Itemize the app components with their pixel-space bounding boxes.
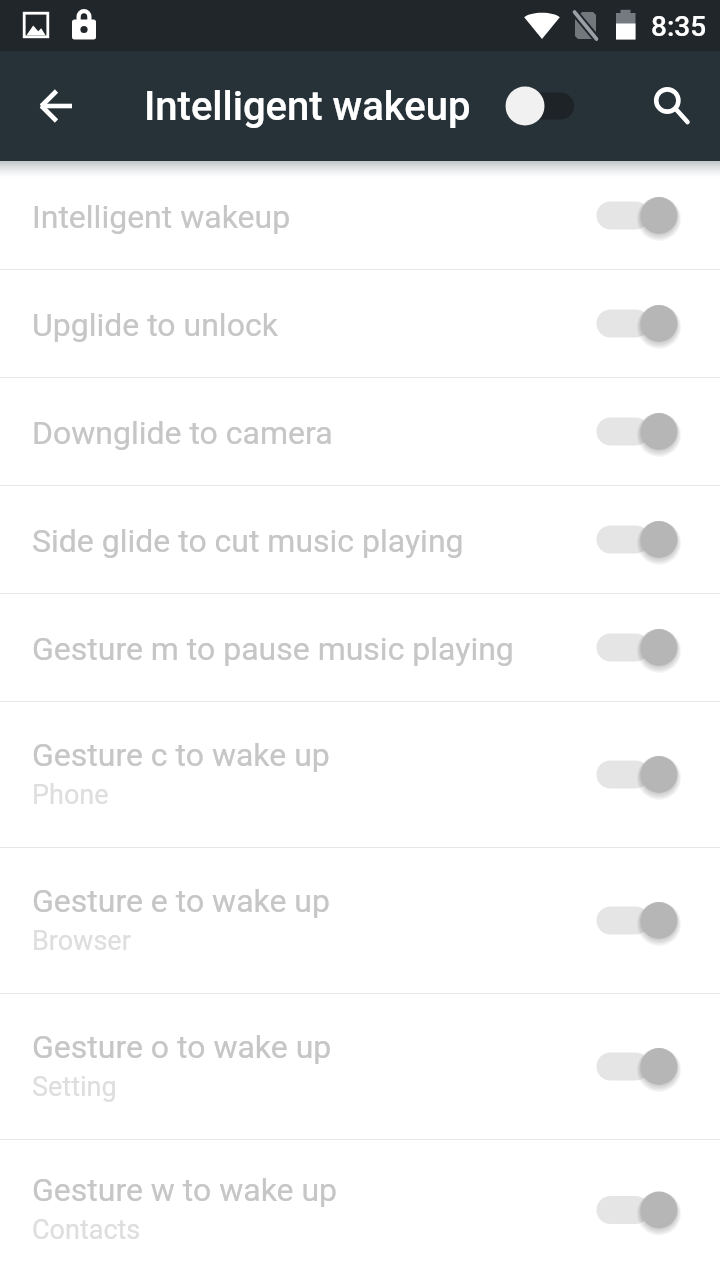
staticText: Upglide to unlock [32, 306, 278, 344]
staticText: Gesture o to wake up [32, 1028, 332, 1066]
button[interactable]: Intelligent wakeup [0, 162, 720, 269]
button[interactable]: Gesture m to pause music playing [0, 594, 720, 701]
button[interactable]: Toggle Upglide to unlock [596, 270, 720, 377]
staticText: Downglide to camera [32, 414, 333, 452]
button[interactable]: Gesture c to wake up [0, 702, 720, 847]
button[interactable]: Toggle intelligent wakeup [495, 70, 591, 142]
button[interactable]: Toggle Gesture w to wake up [596, 1140, 720, 1280]
staticText: Gesture m to pause music playing [32, 630, 514, 668]
button[interactable]: Toggle Downglide to camera [596, 378, 720, 485]
staticText: Phone [32, 779, 109, 811]
button[interactable]: Side glide to cut music playing [0, 486, 720, 593]
button[interactable]: Toggle Gesture m to pause music playing [596, 594, 720, 701]
button[interactable]: Gesture e to wake up [0, 848, 720, 993]
staticText: Browser [32, 925, 131, 957]
button[interactable]: Upglide to unlock [0, 270, 720, 377]
staticText: Intelligent wakeup [144, 83, 471, 130]
staticText: Side glide to cut music playing [32, 522, 464, 560]
button[interactable]: Toggle Side glide to cut music playing [596, 486, 720, 593]
button[interactable]: Downglide to camera [0, 378, 720, 485]
staticText: Setting [32, 1071, 117, 1103]
button[interactable]: Back [28, 78, 84, 134]
staticText: Gesture c to wake up [32, 736, 330, 774]
staticText: 8:35 [651, 10, 707, 43]
staticText: Gesture e to wake up [32, 882, 330, 920]
staticText: Intelligent wakeup [32, 198, 291, 236]
staticText: Contacts [32, 1214, 141, 1246]
button[interactable]: Toggle Gesture c to wake up [596, 702, 720, 847]
button[interactable]: Toggle Intelligent wakeup [596, 162, 720, 269]
button[interactable]: Toggle Gesture e to wake up [596, 848, 720, 993]
button[interactable]: Gesture w to wake up [0, 1140, 720, 1280]
staticText: Gesture w to wake up [32, 1171, 338, 1209]
button[interactable]: Search [637, 78, 693, 134]
button[interactable]: Toggle Gesture o to wake up [596, 994, 720, 1139]
button[interactable]: Gesture o to wake up [0, 994, 720, 1139]
